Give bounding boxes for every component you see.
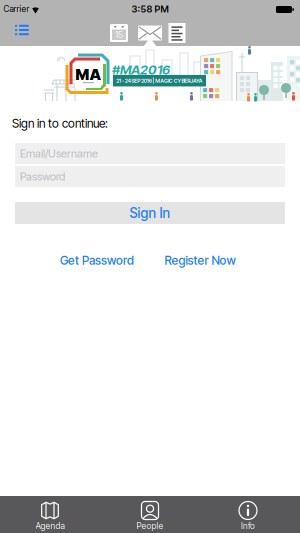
staticText: Sign in to continue: <box>12 116 108 130</box>
staticText: Carrier <box>3 4 29 14</box>
staticText: #MA2016 <box>112 62 170 78</box>
staticText: MA <box>75 65 101 83</box>
staticText: Agenda <box>35 521 64 531</box>
staticText: Get Password <box>60 253 134 268</box>
button[interactable] <box>135 20 165 46</box>
staticText: Register Now <box>164 253 235 268</box>
button[interactable]: Register Now <box>164 253 235 268</box>
staticText: 15 <box>115 30 123 40</box>
button[interactable]: People <box>100 496 200 533</box>
staticText: Info <box>241 521 255 531</box>
button[interactable] <box>7 18 37 42</box>
staticText: People <box>136 521 163 531</box>
button[interactable]: Sign In <box>15 202 285 224</box>
button[interactable]: Password <box>15 166 285 187</box>
staticText: Email/Username <box>20 147 98 160</box>
staticText: 3:58 PM <box>131 3 168 15</box>
button[interactable]: Email/Username <box>15 143 285 164</box>
staticText: Password <box>20 170 65 183</box>
button[interactable]: Info <box>198 496 298 533</box>
button[interactable]: 15 <box>106 20 132 46</box>
button[interactable]: Agenda <box>0 496 100 533</box>
button[interactable] <box>164 20 190 46</box>
staticText: Sign In <box>129 205 170 221</box>
button[interactable]: Get Password <box>60 253 134 268</box>
staticText: 21 - 24 SEP 2016 | MAGIC CYBERJAYA <box>116 77 203 84</box>
